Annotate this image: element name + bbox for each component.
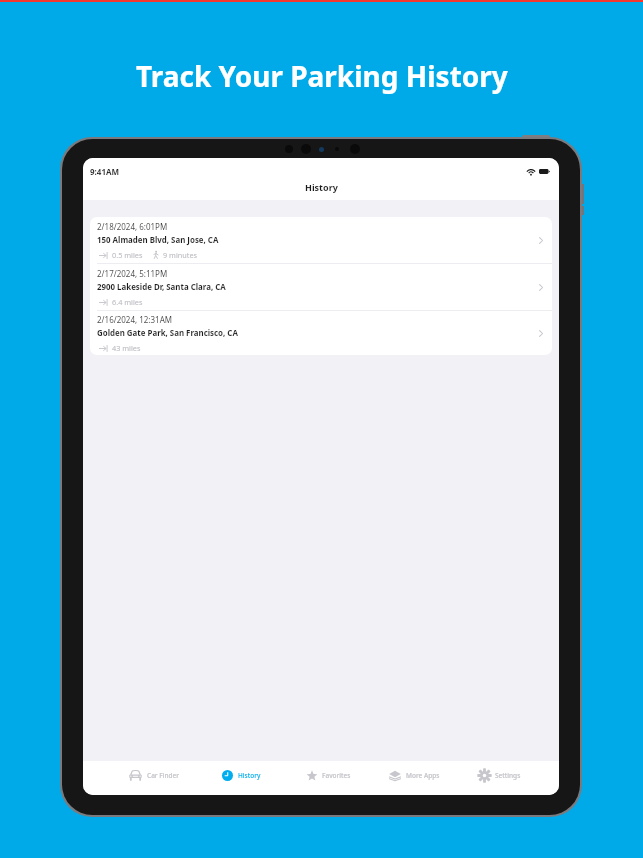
staticText: History <box>305 181 338 193</box>
staticText: 2/18/2024, 6:01PM <box>97 221 168 232</box>
staticText: 43 miles <box>112 343 141 353</box>
button[interactable]: Favorites <box>285 758 371 792</box>
staticText: Track Your Parking History <box>136 57 508 95</box>
staticText: 0.5 miles <box>112 250 143 260</box>
staticText: Favorites <box>322 771 351 780</box>
staticText: 6.4 miles <box>112 297 143 307</box>
staticText: 2900 Lakeside Dr, Santa Clara, CA <box>97 282 226 293</box>
button[interactable]: 2/17/2024, 5:11PM <box>90 264 552 310</box>
staticText: 9 minutes <box>163 250 198 260</box>
button[interactable]: Settings <box>457 758 543 792</box>
staticText: 2/16/2024, 12:31AM <box>97 314 173 325</box>
staticText: 150 Almaden Blvd, San Jose, CA <box>97 235 219 246</box>
staticText: More Apps <box>406 771 440 780</box>
staticText: Car Finder <box>147 771 180 780</box>
button[interactable]: Car Finder <box>111 758 198 792</box>
staticText: Settings <box>495 771 521 780</box>
staticText: Golden Gate Park, San Francisco, CA <box>97 328 238 339</box>
button[interactable]: History <box>198 758 285 792</box>
staticText: 2/17/2024, 5:11PM <box>97 268 168 279</box>
staticText: History <box>238 771 261 780</box>
button[interactable]: 2/16/2024, 12:31AM <box>90 311 552 355</box>
button[interactable]: 2/18/2024, 6:01PM <box>90 217 552 263</box>
button[interactable]: More Apps <box>371 758 457 792</box>
staticText: 9:41AM <box>90 166 120 177</box>
